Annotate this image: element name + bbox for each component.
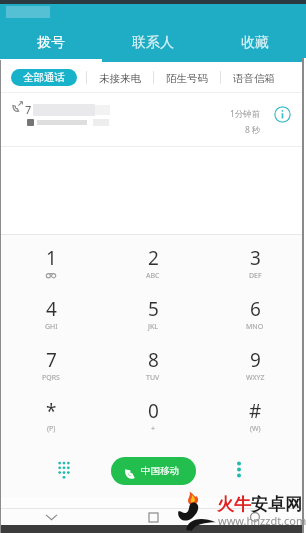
button[interactable]: 7	[0, 337, 102, 388]
staticText: 收藏	[241, 34, 269, 52]
staticText: 1	[46, 245, 57, 271]
staticText: 语音信箱	[233, 72, 275, 85]
staticText: 7	[25, 102, 32, 117]
button[interactable]: 2	[102, 235, 204, 286]
button[interactable]: 未接来电	[87, 62, 153, 92]
staticText: 安卓网	[251, 494, 302, 515]
button[interactable]: 3	[204, 235, 306, 286]
staticText: 8 秒	[245, 124, 261, 136]
button[interactable]: 主页	[102, 509, 204, 525]
staticText: PQRS	[42, 373, 60, 383]
staticText: WXYZ	[246, 373, 265, 383]
staticText: (W)	[250, 424, 261, 434]
staticText: www.hnzzdt.com	[218, 513, 306, 528]
staticText: 0	[148, 398, 159, 424]
staticText: JKL	[148, 322, 158, 332]
staticText: DEF	[249, 271, 262, 281]
button[interactable]: 中国移动	[111, 457, 196, 485]
staticText: 中国移动	[141, 465, 179, 477]
staticText: TUV	[146, 373, 160, 383]
button[interactable]: 6	[204, 286, 306, 337]
button[interactable]: 联系人	[102, 4, 204, 62]
button[interactable]: 最近任务	[204, 509, 306, 525]
staticText: 7	[46, 347, 57, 373]
button[interactable]: 收藏	[204, 4, 306, 62]
staticText: MNO	[246, 322, 264, 332]
button[interactable]: 0	[102, 388, 204, 439]
staticText: 全部通话	[23, 71, 65, 84]
staticText: 1分钟前	[230, 108, 261, 120]
staticText: 2	[148, 245, 159, 271]
button[interactable]: 陌生号码	[154, 62, 220, 92]
button[interactable]: 全部通话	[11, 69, 77, 86]
staticText: #	[249, 398, 262, 424]
staticText: 陌生号码	[166, 72, 208, 85]
button[interactable]: 更多选项	[218, 439, 260, 497]
button[interactable]: 5	[102, 286, 204, 337]
button[interactable]: 返回	[0, 509, 102, 525]
button[interactable]: 通话详情	[274, 106, 291, 123]
button[interactable]: 1	[0, 235, 102, 286]
button[interactable]: 8	[102, 337, 204, 388]
button[interactable]: 7	[0, 93, 306, 146]
button[interactable]: *	[0, 388, 102, 439]
staticText: 9	[250, 347, 261, 373]
button[interactable]: 拨号键盘	[43, 439, 85, 497]
staticText: 8	[148, 347, 159, 373]
staticText: 3	[250, 245, 261, 271]
staticText: 拨号	[37, 34, 65, 52]
staticText: ABC	[146, 271, 160, 281]
staticText: GHI	[45, 322, 58, 332]
staticText: 未接来电	[99, 72, 141, 85]
staticText: (P)	[47, 424, 56, 434]
button[interactable]: 4	[0, 286, 102, 337]
staticText: 火牛	[217, 494, 251, 515]
staticText: *	[46, 398, 57, 424]
staticText: 联系人	[132, 34, 174, 52]
button[interactable]: 9	[204, 337, 306, 388]
button[interactable]: 语音信箱	[221, 62, 287, 92]
button[interactable]: 拨号	[0, 4, 102, 62]
button[interactable]: #	[204, 388, 306, 439]
staticText: 5	[148, 296, 159, 322]
staticText: 4	[46, 296, 57, 322]
staticText: +	[151, 424, 156, 434]
staticText: 6	[250, 296, 261, 322]
